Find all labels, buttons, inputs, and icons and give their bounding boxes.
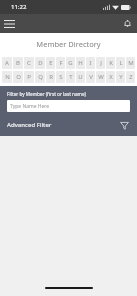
staticText: J (100, 59, 102, 67)
button[interactable]: S (56, 71, 65, 83)
button[interactable]: E (46, 57, 55, 69)
button[interactable]: J (96, 57, 105, 69)
button[interactable]: F (56, 57, 65, 69)
button[interactable]: Type Name Here (7, 100, 130, 112)
staticText: F (59, 59, 63, 67)
button[interactable]: C (24, 57, 34, 69)
staticText: M (128, 59, 134, 67)
button[interactable]: N (2, 71, 12, 83)
staticText: Advanced Filter (7, 121, 118, 129)
staticText: Type Name Here (10, 103, 50, 110)
button[interactable]: K (106, 57, 115, 69)
staticText: K (109, 59, 113, 67)
staticText: A (5, 59, 9, 67)
button[interactable]: V (86, 71, 95, 83)
staticText: E (49, 59, 53, 67)
staticText: T (69, 73, 73, 81)
button[interactable]: Q (35, 71, 45, 83)
staticText: P (27, 73, 31, 81)
staticText: 11:22 (11, 3, 27, 11)
button[interactable]: A (2, 57, 12, 69)
staticText: G (68, 59, 73, 67)
staticText: V (89, 73, 93, 81)
button[interactable]: Y (116, 71, 125, 83)
button[interactable]: Open navigation menu (0, 14, 19, 33)
staticText: Z (129, 73, 133, 81)
button[interactable]: D (35, 57, 45, 69)
button[interactable]: M (126, 57, 135, 69)
staticText: R (49, 73, 53, 81)
button[interactable]: L (116, 57, 125, 69)
button[interactable]: B (13, 57, 23, 69)
button[interactable]: I (86, 57, 95, 69)
button[interactable]: U (76, 71, 85, 83)
staticText: N (5, 73, 10, 81)
button[interactable]: T (66, 71, 75, 83)
other: Advanced filter (118, 119, 130, 131)
staticText: C (27, 59, 31, 67)
staticText: Filter by Member (first or last name) (7, 91, 87, 97)
staticText: H (78, 59, 83, 67)
button[interactable]: O (13, 71, 23, 83)
button[interactable]: G (66, 57, 75, 69)
button[interactable]: R (46, 71, 55, 83)
button[interactable]: P (24, 71, 34, 83)
staticText: U (78, 73, 83, 81)
staticText: W (98, 73, 104, 81)
button[interactable]: Z (126, 71, 135, 83)
staticText: I (89, 59, 92, 67)
staticText: Member Directory (36, 39, 101, 49)
staticText: D (38, 59, 43, 67)
button[interactable]: Advanced Filter (7, 119, 130, 131)
button[interactable]: Notifications (118, 14, 137, 33)
button[interactable]: W (96, 71, 105, 83)
staticText: B (16, 59, 20, 67)
staticText: Q (38, 73, 43, 81)
staticText: Y (119, 73, 123, 81)
staticText: O (16, 73, 21, 81)
button[interactable]: H (76, 57, 85, 69)
staticText: L (119, 59, 123, 67)
staticText: X (109, 73, 113, 81)
staticText: S (59, 73, 63, 81)
button[interactable]: X (106, 71, 115, 83)
